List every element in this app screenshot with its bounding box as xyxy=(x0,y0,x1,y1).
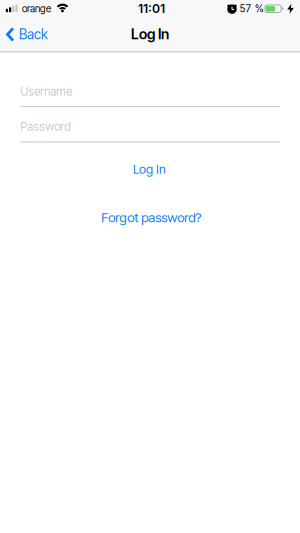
staticText: Password xyxy=(20,120,71,134)
staticText: Username xyxy=(20,84,72,98)
button[interactable]: Log In xyxy=(133,162,166,177)
staticText: 11:01 xyxy=(138,1,165,16)
staticText: Back xyxy=(19,26,48,43)
button[interactable]: Back xyxy=(6,26,48,43)
staticText: orange xyxy=(22,3,51,15)
staticText: Log In xyxy=(133,162,166,177)
staticText: 57 % xyxy=(239,3,264,14)
staticText: Log In xyxy=(131,25,169,43)
staticText: Forgot password? xyxy=(101,209,201,225)
button[interactable]: Forgot password? xyxy=(101,209,201,225)
